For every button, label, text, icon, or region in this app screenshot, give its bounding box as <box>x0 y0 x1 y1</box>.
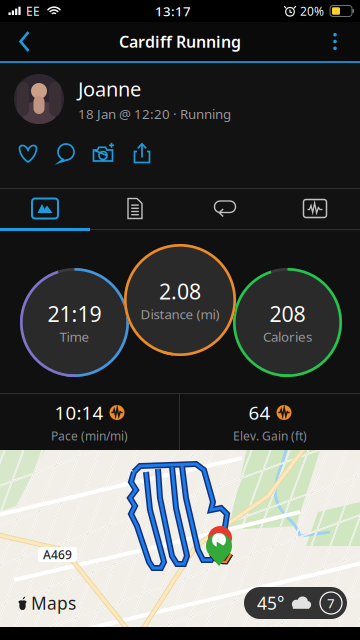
staticText: 10:14 <box>54 400 103 425</box>
staticText: 208 <box>269 299 305 328</box>
staticText: 7 <box>327 594 335 612</box>
staticText: 64 <box>248 400 270 425</box>
staticText: 45° <box>257 591 284 614</box>
button[interactable]: Activity <box>0 189 90 228</box>
staticText: EE <box>26 3 40 19</box>
staticText: A469 <box>43 546 72 562</box>
staticText: Maps <box>31 591 76 614</box>
button[interactable]: Details <box>90 189 180 228</box>
staticText: Elev. Gain (ft) <box>233 428 307 444</box>
button[interactable]: Charts <box>270 189 360 228</box>
staticText: 20% <box>300 3 324 19</box>
staticText: Time <box>59 328 89 345</box>
button[interactable]: Like <box>9 138 47 168</box>
staticText: Distance (mi) <box>140 305 219 323</box>
button[interactable]: Add photo <box>85 138 123 168</box>
staticText: 13:17 <box>155 2 191 20</box>
button[interactable]: Share <box>123 138 161 168</box>
staticText: Calories <box>263 328 312 345</box>
staticText: 18 Jan @ 12:20 · Running <box>78 105 231 123</box>
staticText: 21:19 <box>47 299 101 328</box>
button[interactable]: More options <box>322 24 360 58</box>
staticText: Joanne <box>78 75 141 102</box>
button[interactable]: Back <box>0 25 38 57</box>
staticText: Cardiff Running <box>119 31 241 52</box>
button[interactable]: Comment <box>47 138 85 168</box>
button[interactable]: Laps <box>180 189 270 228</box>
staticText: 2.08 <box>159 277 201 305</box>
staticText: Pace (min/mi) <box>51 428 128 444</box>
